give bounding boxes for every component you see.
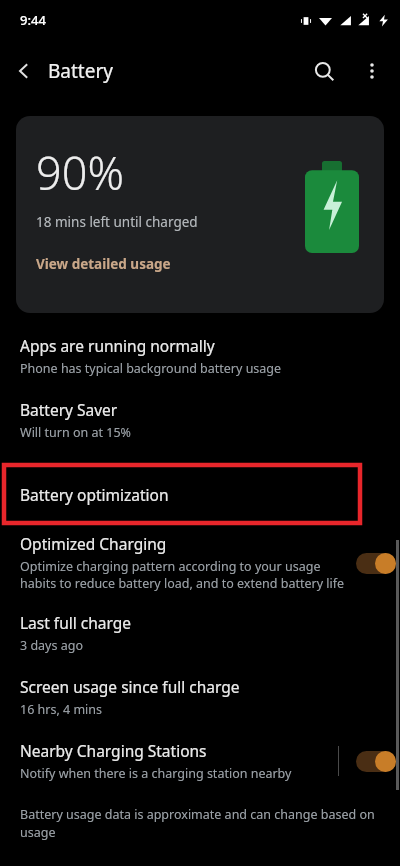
staticText: 9:44 (20, 11, 46, 29)
staticText: Battery usage data is approximate and ca… (20, 806, 375, 841)
staticText: Nearby Charging Stations (20, 740, 207, 761)
button[interactable]: Last full charge (0, 612, 400, 654)
button[interactable]: Screen usage since full charge (0, 676, 400, 718)
staticText: Battery (48, 58, 113, 84)
button[interactable]: More options (348, 47, 396, 95)
button[interactable]: Battery optimization (2, 463, 362, 525)
staticText: Optimized Charging (20, 533, 167, 554)
button[interactable]: Search (300, 47, 348, 95)
button[interactable]: Apps are running normally (0, 335, 400, 377)
button[interactable]: Nearby Charging Stations (0, 740, 400, 782)
button[interactable]: Optimized Charging (0, 533, 400, 592)
staticText: Battery Saver (20, 399, 118, 420)
staticText: Screen usage since full charge (20, 676, 240, 697)
staticText: Apps are running normally (20, 335, 215, 356)
staticText: Battery optimization (20, 484, 169, 505)
staticText: 3 days ago (20, 637, 83, 654)
button[interactable]: Nearby Charging Stations toggle (356, 750, 396, 772)
staticText: 18 mins left until charged (36, 213, 198, 231)
staticText: Notify when there is a charging station … (20, 765, 292, 782)
button[interactable]: Back (0, 47, 48, 95)
button[interactable]: Optimized Charging toggle (356, 552, 396, 574)
staticText: Last full charge (20, 612, 132, 633)
staticText: Optimize charging pattern according to y… (20, 558, 345, 592)
staticText: 90% (36, 142, 124, 203)
button[interactable]: View detailed usage (36, 255, 171, 273)
staticText: Will turn on at 15% (20, 424, 131, 441)
staticText: Phone has typical background battery usa… (20, 360, 282, 377)
staticText: 16 hrs, 4 mins (20, 701, 103, 718)
button[interactable]: Battery Saver (0, 399, 400, 441)
button[interactable]: 90% (16, 116, 384, 313)
